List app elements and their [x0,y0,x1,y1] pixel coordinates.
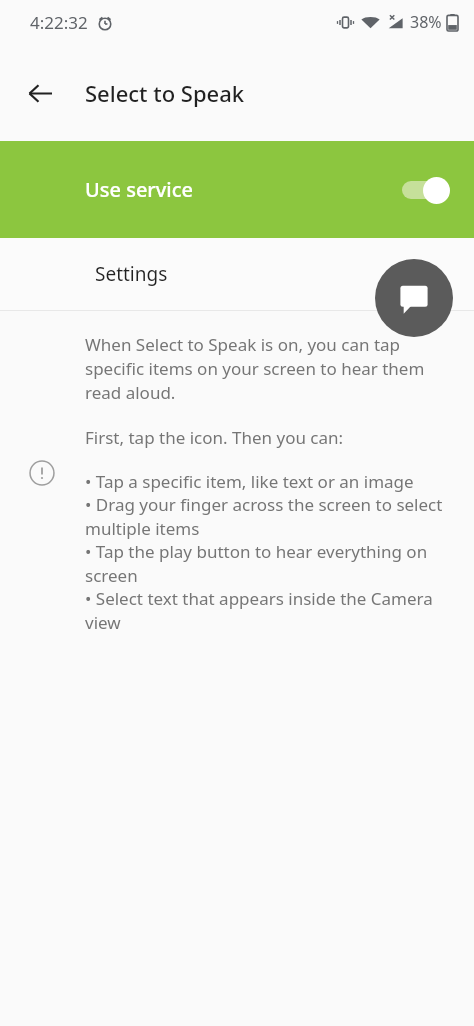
staticText: 4:22:32 [30,11,88,34]
staticText: When Select to Speak is on, you can tap … [85,333,454,404]
staticText: • Tap the play button to hear everything… [85,540,454,587]
button[interactable]: Settings [0,238,474,310]
staticText: Use service [85,176,194,203]
button[interactable]: Back [16,69,64,117]
button[interactable]: Use service [0,141,474,238]
staticText: Select to Speak [85,78,245,108]
staticText: Settings [95,261,168,287]
staticText: • Drag your finger across the screen to … [85,493,454,540]
staticText: First, tap the icon. Then you can: [85,426,344,449]
staticText: 38% [410,11,442,33]
button[interactable]: Feedback [375,259,453,337]
staticText: • Tap a specific item, like text or an i… [85,470,414,493]
staticText: • Select text that appears inside the Ca… [85,587,454,634]
